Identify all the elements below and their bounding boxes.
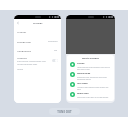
- button[interactable]: Account: [14, 26, 61, 36]
- staticText: Download your favourites and listen anyw…: [77, 76, 111, 80]
- button[interactable]: TUNE OUT: [49, 108, 80, 115]
- staticText: About: [17, 68, 23, 71]
- button[interactable]: Autoplay: [14, 55, 61, 66]
- staticText: Premium: [48, 40, 58, 43]
- button[interactable]: Family plan: [67, 91, 114, 101]
- staticText: Share your plan with up to five people: [77, 96, 109, 98]
- button[interactable]: Ad-free: [67, 61, 114, 71]
- staticText: Settings: [33, 21, 43, 24]
- staticText: Listen without interruptions from ads at…: [77, 66, 111, 70]
- staticText: Family plan: [77, 92, 89, 95]
- button[interactable]: Change plan: [14, 36, 61, 46]
- staticText: Autoplay: [17, 56, 27, 59]
- staticText: Notifications: [17, 49, 32, 52]
- button[interactable]: Back: [14, 19, 22, 26]
- button[interactable]: Notifications: [14, 46, 61, 55]
- button[interactable]: HiFi sound: [67, 81, 114, 91]
- staticText: On: [54, 49, 58, 52]
- staticText: Plays similar content when your current …: [17, 60, 50, 66]
- staticText: Ad-free: [77, 62, 85, 65]
- staticText: Lossless high fidelity audio quality any…: [77, 86, 111, 90]
- staticText: Change plan: [17, 40, 32, 43]
- staticText: TUNE OUT: [57, 110, 72, 114]
- button[interactable]: Offline mode: [67, 71, 114, 81]
- staticText: Offline mode: [77, 72, 91, 75]
- staticText: Account: [17, 30, 27, 33]
- staticText: HiFi sound: [77, 82, 88, 85]
- staticText: What's included: [82, 57, 99, 60]
